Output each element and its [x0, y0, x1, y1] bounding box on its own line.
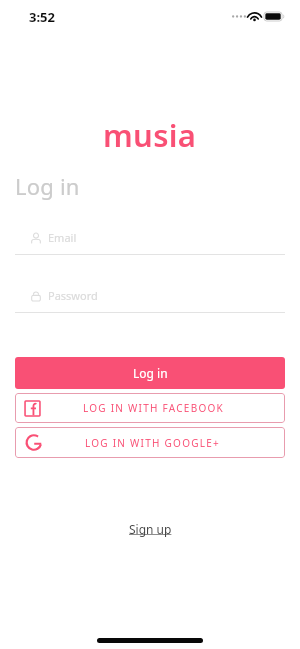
staticText: Password	[48, 288, 98, 303]
other: Password icon	[30, 290, 42, 302]
button[interactable]: Log in	[15, 357, 285, 389]
button[interactable]: LOG IN WITH FACEBOOK	[15, 393, 285, 423]
button[interactable]: LOG IN WITH GOOGLE+	[15, 427, 285, 458]
staticText: Log in	[133, 365, 168, 381]
staticText: LOG IN WITH GOOGLE+	[85, 436, 221, 450]
staticText: Sign up	[129, 521, 172, 537]
other: Email icon	[30, 232, 42, 244]
staticText: Log in	[15, 171, 80, 201]
staticText: LOG IN WITH FACEBOOK	[83, 401, 224, 415]
staticText: musia	[103, 114, 197, 156]
button[interactable]: Password icon	[15, 288, 285, 312]
button[interactable]: Email icon	[15, 230, 285, 254]
other: Google Plus	[22, 432, 43, 453]
staticText: Email	[48, 230, 77, 245]
staticText: 3:52	[29, 8, 55, 26]
other: Facebook	[22, 398, 43, 419]
button[interactable]: Sign up	[123, 518, 178, 540]
